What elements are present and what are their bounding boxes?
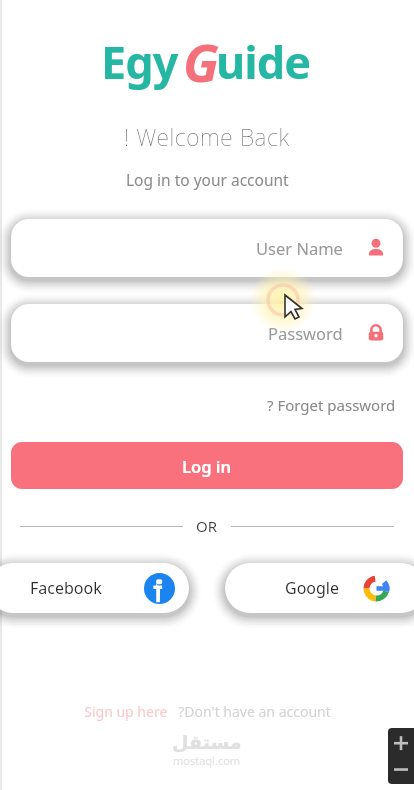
button[interactable]: Google — [225, 563, 414, 613]
staticText: uide — [216, 31, 311, 92]
staticText: مستقل — [172, 731, 242, 753]
button[interactable]: Password — [11, 304, 403, 362]
staticText: User Name — [256, 237, 343, 259]
button[interactable]: Sign up here ?Don't have an account — [0, 696, 414, 727]
button[interactable]: Facebook — [0, 563, 189, 613]
staticText: Log in — [182, 455, 232, 477]
button[interactable]: Zoom controls — [388, 728, 414, 784]
staticText: Log in to your account — [126, 169, 289, 190]
button[interactable]: User Name — [11, 219, 403, 277]
staticText: Google — [285, 577, 340, 599]
staticText: Password — [268, 322, 343, 344]
button[interactable]: Log in — [11, 442, 403, 489]
button[interactable]: ? Forget password — [263, 392, 400, 418]
staticText: mostaql.com — [173, 753, 241, 768]
staticText: ? Forget password — [267, 395, 396, 415]
staticText: OR — [196, 516, 218, 536]
staticText: Sign up here ?Don't have an account — [84, 702, 331, 721]
staticText: Facebook — [30, 577, 102, 599]
staticText: G — [183, 26, 219, 97]
staticText: Egy — [101, 31, 178, 92]
staticText: ! Welcome Back — [124, 121, 290, 152]
